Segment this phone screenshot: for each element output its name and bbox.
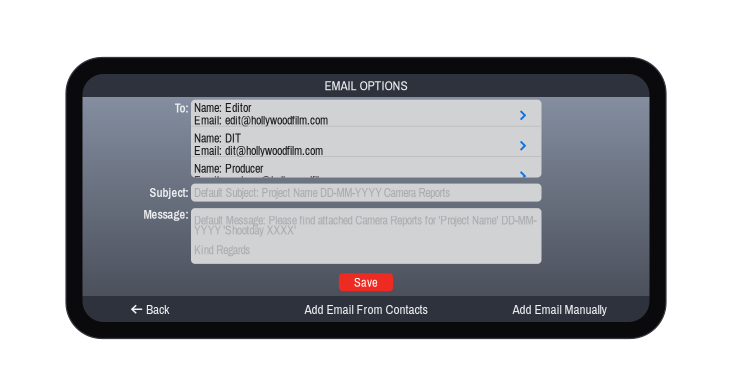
button[interactable]: Back [124, 296, 176, 322]
staticText: Name: Editor [194, 101, 251, 114]
staticText: EMAIL OPTIONS [324, 78, 407, 93]
staticText: Name: DIT [194, 132, 241, 144]
button[interactable]: Name: Sound [191, 187, 541, 217]
staticText: Add Email Manually [512, 302, 606, 316]
button[interactable]: Name: Producer [191, 157, 541, 187]
staticText: Back [146, 302, 169, 316]
staticText: Message: [143, 208, 188, 221]
staticText: Email: dit@hollywoodfilm.com [194, 144, 323, 157]
staticText: Add Email From Contacts [304, 302, 427, 316]
staticText: Default Subject: Project Name DD-MM-YYYY… [194, 186, 450, 199]
button[interactable]: Add Email Manually [504, 296, 614, 322]
staticText: Email: producer@hollywoodfilm.com [194, 175, 348, 187]
button[interactable]: Add Email From Contacts [296, 296, 435, 322]
button[interactable]: Save [339, 273, 393, 291]
staticText: Name: Sound [194, 193, 252, 205]
staticText: Name: Producer [194, 162, 263, 175]
button[interactable]: Name: DIT [191, 126, 541, 156]
staticText: Default Message: Please find attached Ca… [194, 215, 536, 255]
staticText: Email: edit@hollywoodfilm.com [194, 114, 328, 126]
staticText: Save [354, 276, 378, 289]
button[interactable]: Name: Editor [191, 96, 541, 126]
staticText: Email: sound@hollywoodfilm.com [194, 205, 337, 217]
staticText: Subject: [149, 186, 188, 199]
staticText: To: [174, 101, 188, 115]
